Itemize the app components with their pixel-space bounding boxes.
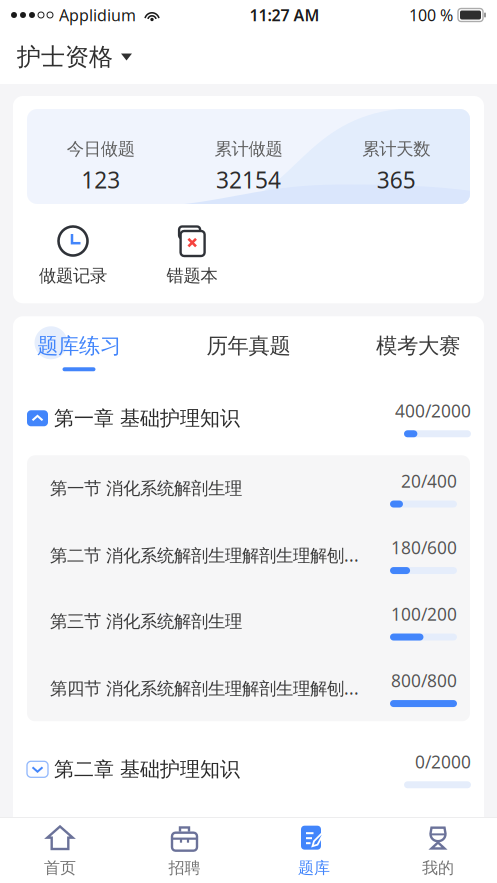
staticText: 累计做题 (214, 138, 282, 160)
button[interactable]: 招聘 (120, 817, 249, 883)
staticText: 100 % (409, 4, 453, 26)
staticText: 历年真题 (206, 333, 290, 359)
button[interactable]: 护士资格 (13, 34, 136, 80)
button[interactable]: 第一章 基础护理知识 (13, 393, 484, 443)
button[interactable]: 做题记录 (13, 225, 132, 286)
staticText: 123 (81, 165, 120, 195)
staticText: 365 (377, 165, 416, 195)
button[interactable]: 错题本 (132, 225, 251, 286)
button[interactable]: 第二章 基础护理知识 (13, 744, 484, 794)
staticText: 第四节 消化系统解剖生理解剖生理解刨... (50, 676, 359, 699)
staticText: 我的 (422, 858, 454, 878)
button[interactable]: 首页 (0, 817, 120, 883)
staticText: 第二章 基础护理知识 (54, 757, 240, 782)
staticText: 模考大赛 (376, 333, 460, 359)
button[interactable]: 第三节 消化系统解剖生理 (27, 588, 470, 655)
staticText: 首页 (44, 858, 76, 878)
staticText: 第三节 消化系统解剖生理 (50, 611, 242, 632)
staticText: 第一章 基础护理知识 (54, 406, 240, 431)
staticText: 护士资格 (17, 42, 113, 72)
staticText: Applidium (59, 4, 136, 26)
staticText: 做题记录 (39, 265, 107, 286)
staticText: 20/400 (401, 469, 457, 492)
staticText: 错题本 (166, 265, 217, 286)
staticText: 第二节 消化系统解剖生理解剖生理解刨... (50, 543, 359, 566)
staticText: 400/2000 (395, 399, 471, 422)
staticText: 180/600 (391, 536, 457, 559)
button[interactable]: 我的 (379, 817, 497, 883)
staticText: 招聘 (168, 858, 200, 878)
staticText: 累计天数 (362, 138, 430, 160)
staticText: 第一节 消化系统解剖生理 (50, 478, 242, 499)
button[interactable]: 第一节 消化系统解剖生理 (27, 455, 470, 522)
button[interactable]: 模考大赛 (352, 316, 484, 371)
staticText: 题库 (298, 858, 330, 878)
staticText: 11:27 AM (249, 4, 319, 26)
staticText: 100/200 (391, 602, 457, 625)
staticText: 题库练习 (37, 333, 121, 359)
staticText: 800/800 (391, 669, 457, 692)
button[interactable]: 第四节 消化系统解剖生理解剖生理解刨... (27, 655, 470, 721)
staticText: 32154 (216, 165, 281, 195)
button[interactable]: 题库练习 (13, 316, 145, 371)
button[interactable]: 历年真题 (145, 316, 352, 371)
staticText: 今日做题 (67, 138, 135, 160)
button[interactable]: 题库 (249, 817, 379, 883)
button[interactable]: 第二节 消化系统解剖生理解剖生理解刨... (27, 522, 470, 588)
staticText: 0/2000 (415, 750, 471, 773)
